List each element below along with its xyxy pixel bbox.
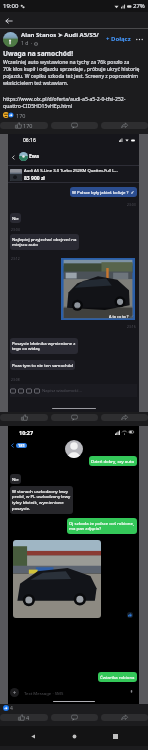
staticText: 4	[26, 714, 30, 721]
staticText: 06:16	[23, 137, 36, 144]
staticText: Ewa	[29, 153, 40, 160]
staticText: 19:00	[3, 2, 19, 10]
button[interactable]: Share	[101, 714, 148, 721]
staticText: Poszycie błotnika wymienione z tego co w…	[12, 340, 76, 352]
staticText: 23:04	[11, 227, 20, 232]
staticText: Najlepiej przyjechać obejrzeć na miejscu…	[12, 236, 77, 248]
staticText: 23:16	[127, 324, 136, 329]
staticText: 83 900 zł	[24, 175, 45, 182]
staticText: +	[106, 35, 111, 43]
staticText: Alan Stanos ➤ Audi A5/S5/RS5 ...	[21, 31, 105, 39]
button[interactable]: +	[105, 35, 132, 43]
button[interactable]: 4	[3, 704, 145, 712]
button[interactable]: Comment	[51, 122, 98, 129]
button[interactable]: More options	[134, 34, 145, 45]
staticText: A to co to ?	[109, 314, 130, 319]
button[interactable]: Share	[101, 414, 148, 421]
button[interactable]: Comment	[51, 714, 98, 721]
button[interactable]: Share	[101, 122, 148, 129]
staticText: 4	[10, 705, 13, 712]
staticText: 10:27	[19, 429, 34, 436]
button[interactable]: Add attachment	[10, 688, 19, 697]
button[interactable]: Home	[66, 728, 82, 744]
button[interactable]: Back to messages	[10, 443, 27, 448]
button[interactable]: https://www.olx.pl/d/oferta/audi-a5-a5-2…	[3, 96, 126, 110]
staticText: 1 d ·	[21, 40, 33, 47]
button[interactable]: 170	[3, 110, 145, 120]
staticText: W Polsce były jakieś kolizje ? ✓	[72, 189, 135, 195]
button[interactable]: Back	[25, 728, 41, 744]
staticText: Nie	[12, 215, 19, 221]
button[interactable]: Comment	[51, 414, 98, 421]
staticText: Dołącz	[111, 35, 131, 43]
staticText: W stanach uszkodzony lewy przód, w PL us…	[12, 488, 71, 512]
staticText: 170	[23, 122, 33, 129]
staticText: 181	[18, 443, 25, 448]
button[interactable]: Like	[0, 122, 48, 129]
staticText: Audi A5 S-Line 3.0 Turbo 252KM Quattro-F…	[24, 168, 118, 174]
button[interactable]: Like	[0, 714, 48, 721]
button[interactable]: Like	[0, 414, 48, 421]
staticText: 23:03	[127, 202, 136, 207]
button[interactable]: Attachment 2	[26, 388, 32, 394]
staticText: Oj szkoda że polsce coś robione, ma pan …	[69, 520, 135, 532]
button[interactable]: Attachment 1	[18, 388, 24, 394]
button[interactable]: Recent apps	[107, 728, 123, 744]
staticText: Uwaga na samochód!	[3, 49, 74, 58]
button[interactable]: Back	[10, 154, 16, 160]
staticText: 23:12	[11, 256, 20, 261]
staticText: 27%	[133, 2, 145, 10]
staticText: 23:08	[11, 377, 20, 382]
staticText: 170	[16, 112, 26, 119]
button[interactable]: Attachment 3	[34, 388, 40, 394]
staticText: Ćwiartka robiona	[100, 674, 135, 680]
staticText: Napisz wiadomość...	[42, 388, 82, 394]
button[interactable]: Attachment 0	[10, 388, 16, 394]
button[interactable]: Profile photo	[3, 32, 18, 47]
staticText: Text Message · SMS	[24, 690, 64, 696]
staticText: Poza tym to nie ten samochód	[12, 362, 73, 368]
staticText: Dzień dobry, czy auto	[91, 458, 135, 464]
button[interactable]: Back	[2, 14, 15, 27]
staticText: Nie	[12, 476, 19, 482]
staticText: Wcześniej auto wystawione na tychy za 76…	[3, 59, 140, 87]
